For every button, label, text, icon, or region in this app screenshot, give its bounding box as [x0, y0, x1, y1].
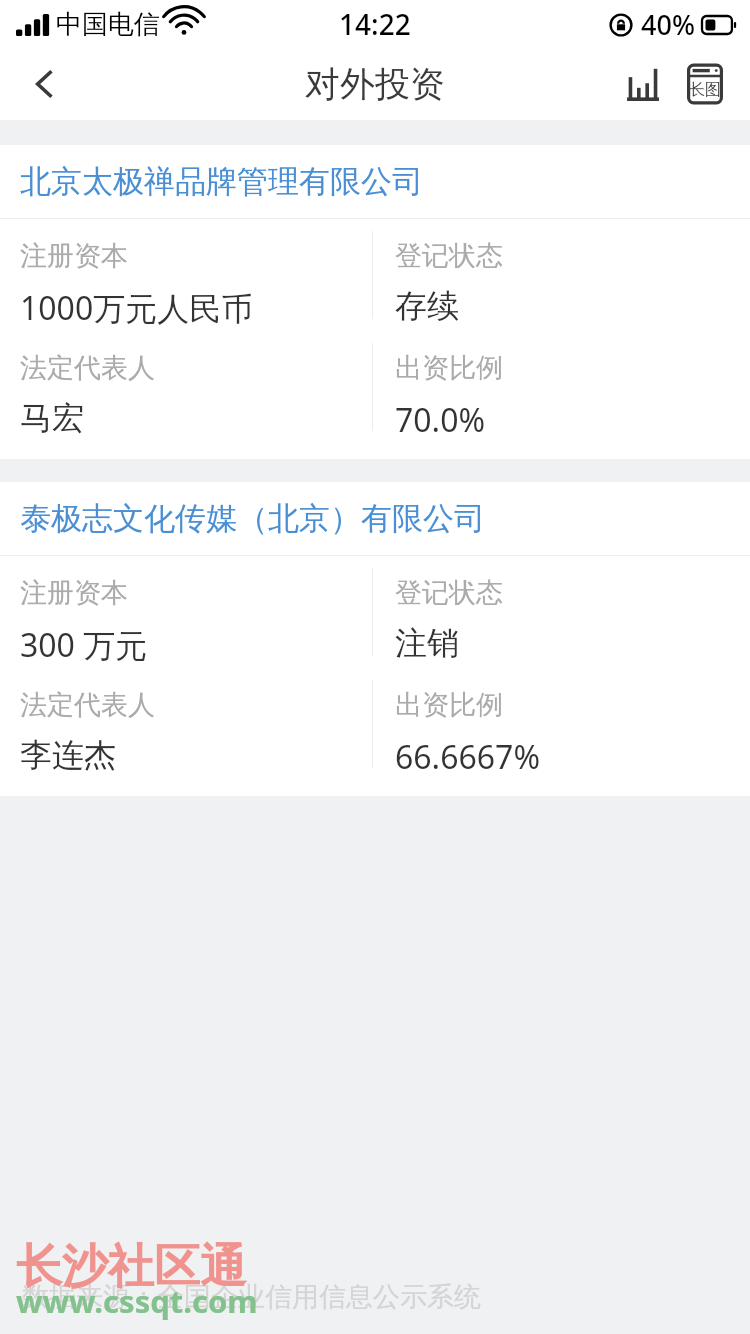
- staticText: 1000万元人民币: [20, 286, 254, 330]
- staticText: 注册资本: [20, 239, 128, 273]
- staticText: 对外投资: [305, 62, 445, 106]
- staticText: 数据来源：全国企业信用信息公示系统: [22, 1280, 481, 1314]
- staticText: 马宏: [20, 398, 84, 438]
- staticText: www.cssqt.com: [16, 1280, 258, 1322]
- staticText: 长图: [689, 80, 721, 100]
- staticText: 北京太极禅品牌管理有限公司: [20, 162, 423, 201]
- staticText: 70.0%: [395, 398, 486, 442]
- button[interactable]: 泰极志文化传媒（北京）有限公司: [0, 482, 750, 796]
- staticText: 注册资本: [20, 576, 128, 610]
- staticText: 出资比例: [395, 688, 503, 722]
- staticText: 40%: [641, 6, 695, 43]
- staticText: 出资比例: [395, 351, 503, 385]
- staticText: 中国电信: [56, 8, 160, 41]
- staticText: 长沙社区通: [16, 1238, 246, 1296]
- staticText: 登记状态: [395, 239, 503, 273]
- staticText: 存续: [395, 286, 459, 326]
- staticText: 泰极志文化传媒（北京）有限公司: [20, 499, 485, 538]
- staticText: 李连杰: [20, 735, 116, 775]
- staticText: 14:22: [339, 5, 411, 43]
- staticText: 法定代表人: [20, 351, 155, 385]
- button[interactable]: Chart: [614, 55, 672, 113]
- button[interactable]: Long image: [676, 55, 734, 113]
- staticText: 300 万元: [20, 623, 148, 667]
- staticText: 66.6667%: [395, 735, 540, 779]
- staticText: 登记状态: [395, 576, 503, 610]
- button[interactable]: 北京太极禅品牌管理有限公司: [0, 145, 750, 459]
- button[interactable]: Back: [0, 48, 90, 120]
- staticText: 法定代表人: [20, 688, 155, 722]
- staticText: 注销: [395, 623, 459, 663]
